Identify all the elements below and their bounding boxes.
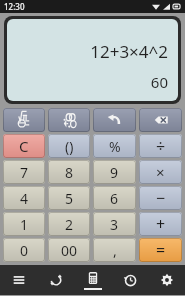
- button[interactable]: Menu: [0, 265, 37, 295]
- staticText: 4: [20, 189, 29, 208]
- button[interactable]: 2: [48, 212, 90, 236]
- staticText: −: [156, 187, 166, 209]
- button[interactable]: C: [3, 134, 45, 158]
- staticText: 0: [20, 241, 29, 260]
- button[interactable]: History: [111, 265, 148, 295]
- staticText: C: [19, 136, 29, 156]
- staticText: 7: [20, 163, 29, 182]
- button[interactable]: Backspace: [139, 108, 182, 132]
- button[interactable]: Calculator: [74, 265, 111, 295]
- staticText: 2: [65, 215, 74, 234]
- staticText: 6: [110, 189, 119, 208]
- button[interactable]: 12+3×4^2: [7, 19, 178, 101]
- staticText: 1: [20, 215, 29, 234]
- button[interactable]: Decimal places: [48, 108, 90, 132]
- staticText: 00: [61, 241, 78, 260]
- button[interactable]: +: [139, 212, 182, 236]
- button[interactable]: 4: [3, 186, 45, 210]
- button[interactable]: 0: [3, 238, 45, 262]
- staticText: ,: [113, 241, 117, 260]
- button[interactable]: 6: [93, 186, 136, 210]
- staticText: 8: [65, 163, 74, 182]
- staticText: ×: [156, 162, 165, 182]
- button[interactable]: Pi and e constants: [3, 108, 45, 132]
- staticText: 3: [110, 215, 119, 234]
- staticText: 60: [150, 72, 168, 92]
- staticText: (): [65, 137, 74, 156]
- button[interactable]: Settings: [148, 265, 185, 295]
- button[interactable]: (): [48, 134, 90, 158]
- button[interactable]: ×: [139, 160, 182, 184]
- button[interactable]: 8: [48, 160, 90, 184]
- staticText: 12+3×4^2: [90, 40, 168, 63]
- button[interactable]: 3: [93, 212, 136, 236]
- staticText: +: [156, 213, 166, 235]
- button[interactable]: 5: [48, 186, 90, 210]
- button[interactable]: =: [139, 238, 182, 262]
- staticText: %: [109, 137, 121, 156]
- button[interactable]: ,: [93, 238, 136, 262]
- button[interactable]: 00: [48, 238, 90, 262]
- button[interactable]: 1: [3, 212, 45, 236]
- button[interactable]: 7: [3, 160, 45, 184]
- staticText: ÷: [156, 135, 166, 157]
- button[interactable]: Converter: [37, 265, 74, 295]
- button[interactable]: −: [139, 186, 182, 210]
- staticText: 12:30: [4, 1, 25, 12]
- staticText: 9: [110, 163, 119, 182]
- button[interactable]: 9: [93, 160, 136, 184]
- button[interactable]: ÷: [139, 134, 182, 158]
- button[interactable]: Undo: [93, 108, 136, 132]
- button[interactable]: %: [93, 134, 136, 158]
- staticText: 5: [65, 189, 74, 208]
- staticText: =: [156, 239, 166, 261]
